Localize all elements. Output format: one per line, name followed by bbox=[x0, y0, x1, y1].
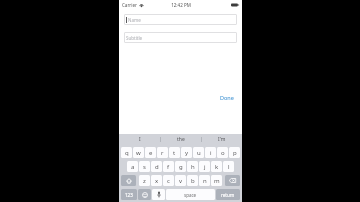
button[interactable]: j bbox=[199, 161, 210, 172]
button[interactable]: x bbox=[151, 175, 162, 186]
button[interactable]: Subtitle bbox=[124, 32, 237, 43]
staticText: c bbox=[167, 177, 170, 185]
staticText: n bbox=[203, 177, 207, 185]
staticText: e bbox=[149, 149, 153, 157]
staticText: d bbox=[155, 163, 159, 171]
button[interactable]: h bbox=[187, 161, 198, 172]
staticText: Done bbox=[220, 94, 234, 101]
button[interactable]: Shift bbox=[121, 175, 136, 186]
staticText: I bbox=[139, 136, 141, 143]
staticText: o bbox=[221, 149, 225, 157]
staticText: i bbox=[210, 149, 212, 157]
staticText: z bbox=[143, 177, 146, 185]
button[interactable]: Done bbox=[218, 93, 236, 102]
button[interactable]: e bbox=[145, 147, 156, 158]
button[interactable]: d bbox=[151, 161, 162, 172]
staticText: v bbox=[179, 177, 183, 185]
staticText: y bbox=[185, 149, 189, 157]
button[interactable]: i bbox=[205, 147, 216, 158]
button[interactable]: l bbox=[223, 161, 234, 172]
button[interactable]: b bbox=[187, 175, 198, 186]
button[interactable]: p bbox=[229, 147, 240, 158]
button[interactable]: z bbox=[139, 175, 150, 186]
button[interactable]: Name bbox=[124, 14, 237, 25]
button[interactable]: n bbox=[199, 175, 210, 186]
staticText: the bbox=[177, 136, 185, 143]
staticText: g bbox=[179, 163, 183, 171]
button[interactable]: s bbox=[139, 161, 150, 172]
button[interactable]: y bbox=[181, 147, 192, 158]
staticText: 123 bbox=[125, 192, 133, 198]
staticText: u bbox=[197, 149, 201, 157]
button[interactable]: Dictate bbox=[152, 189, 165, 200]
staticText: Subtitle bbox=[126, 35, 143, 41]
staticText: r bbox=[161, 149, 164, 157]
button[interactable]: the bbox=[161, 134, 201, 145]
staticText: return bbox=[221, 192, 235, 198]
staticText: m bbox=[214, 177, 220, 185]
staticText: h bbox=[191, 163, 195, 171]
staticText: p bbox=[233, 149, 237, 157]
button[interactable]: u bbox=[193, 147, 204, 158]
button[interactable]: 123 bbox=[121, 189, 137, 200]
staticText: 12:42 PM bbox=[171, 2, 191, 8]
button[interactable]: v bbox=[175, 175, 186, 186]
staticText: s bbox=[143, 163, 146, 171]
staticText: space bbox=[184, 192, 197, 198]
button[interactable]: g bbox=[175, 161, 186, 172]
button[interactable]: I'm bbox=[202, 134, 242, 145]
staticText: x bbox=[155, 177, 159, 185]
button[interactable]: return bbox=[216, 189, 240, 200]
button[interactable]: q bbox=[121, 147, 132, 158]
button[interactable]: I bbox=[119, 134, 160, 145]
button[interactable]: Emoji bbox=[138, 189, 151, 200]
button[interactable]: f bbox=[163, 161, 174, 172]
button[interactable]: w bbox=[133, 147, 144, 158]
staticText: j bbox=[204, 163, 206, 171]
button[interactable]: o bbox=[217, 147, 228, 158]
button[interactable]: c bbox=[163, 175, 174, 186]
staticText: a bbox=[131, 163, 135, 171]
button[interactable]: Backspace bbox=[225, 175, 240, 186]
staticText: k bbox=[215, 163, 219, 171]
staticText: q bbox=[125, 149, 129, 157]
staticText: l bbox=[228, 163, 230, 171]
button[interactable]: k bbox=[211, 161, 222, 172]
staticText: I'm bbox=[218, 136, 226, 143]
staticText: b bbox=[191, 177, 195, 185]
button[interactable]: a bbox=[127, 161, 138, 172]
staticText: t bbox=[173, 149, 176, 157]
button[interactable]: space bbox=[166, 189, 215, 200]
button[interactable]: r bbox=[157, 147, 168, 158]
staticText: w bbox=[136, 149, 141, 157]
staticText: Name bbox=[128, 17, 141, 23]
button[interactable]: m bbox=[211, 175, 222, 186]
staticText: Carrier bbox=[122, 2, 137, 8]
staticText: f bbox=[167, 163, 170, 171]
button[interactable]: t bbox=[169, 147, 180, 158]
